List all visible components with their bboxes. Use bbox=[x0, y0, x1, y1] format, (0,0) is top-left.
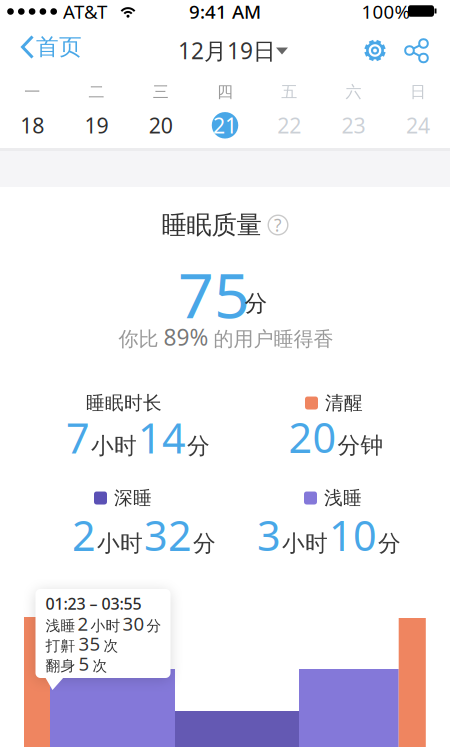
button[interactable]: ? bbox=[267, 214, 288, 235]
staticText: 小时 bbox=[91, 432, 137, 460]
button[interactable]: 六 bbox=[324, 81, 384, 145]
staticText: 14 bbox=[138, 410, 186, 465]
button[interactable] bbox=[50, 669, 175, 747]
button[interactable] bbox=[399, 33, 433, 67]
staticText: 五 bbox=[281, 82, 297, 102]
staticText: 100% bbox=[361, 0, 410, 24]
staticText: 24 bbox=[406, 111, 430, 139]
button[interactable] bbox=[299, 669, 399, 747]
staticText: ? bbox=[274, 213, 282, 236]
staticText: 分 bbox=[193, 530, 216, 557]
button[interactable]: 一 bbox=[2, 81, 62, 145]
staticText: 2 bbox=[77, 611, 88, 636]
staticText: 19 bbox=[84, 111, 108, 139]
staticText: 打鼾 bbox=[45, 637, 75, 655]
staticText: 小时 bbox=[90, 617, 120, 635]
staticText: 分 bbox=[187, 432, 210, 460]
staticText: 的用户睡得香 bbox=[213, 327, 333, 351]
staticText: 18 bbox=[20, 111, 44, 139]
button[interactable]: 日 bbox=[388, 81, 448, 145]
button[interactable]: 五 bbox=[259, 81, 319, 145]
staticText: 日 bbox=[410, 82, 426, 102]
button[interactable] bbox=[358, 33, 392, 67]
staticText: 睡眠时长 bbox=[86, 391, 162, 414]
button[interactable] bbox=[399, 618, 426, 747]
staticText: 23 bbox=[342, 111, 366, 139]
staticText: 10 bbox=[329, 508, 377, 562]
staticText: 30 bbox=[122, 611, 144, 636]
staticText: 20 bbox=[149, 111, 173, 139]
staticText: 分 bbox=[244, 290, 267, 317]
staticText: 次 bbox=[92, 657, 107, 675]
button[interactable] bbox=[24, 617, 50, 747]
staticText: 首页 bbox=[36, 33, 82, 61]
staticText: 一 bbox=[24, 82, 40, 102]
staticText: 四 bbox=[217, 82, 233, 102]
staticText: 9:41 AM bbox=[189, 0, 261, 24]
staticText: 21 bbox=[213, 111, 237, 139]
staticText: 89% bbox=[163, 322, 208, 352]
staticText: 次 bbox=[103, 637, 118, 655]
staticText: 22 bbox=[277, 111, 301, 139]
staticText: 小时 bbox=[282, 530, 328, 557]
staticText: 你比 bbox=[118, 327, 158, 351]
staticText: AT&T bbox=[63, 0, 107, 24]
staticText: 分 bbox=[146, 617, 161, 635]
button[interactable]: 三 bbox=[131, 81, 191, 145]
staticText: 小时 bbox=[97, 530, 143, 557]
staticText: 75 bbox=[178, 252, 250, 336]
staticText: 三 bbox=[153, 82, 169, 102]
button[interactable]: 二 bbox=[66, 81, 126, 145]
staticText: 分钟 bbox=[337, 432, 383, 459]
staticText: 清醒 bbox=[325, 391, 363, 414]
staticText: 2 bbox=[72, 508, 96, 562]
staticText: 5 bbox=[78, 651, 89, 676]
staticText: 翻身 bbox=[45, 657, 75, 675]
staticText: 浅睡 bbox=[45, 617, 75, 635]
staticText: 12月19日 bbox=[178, 35, 276, 65]
staticText: 六 bbox=[346, 82, 362, 102]
staticText: 32 bbox=[144, 508, 192, 562]
staticText: 浅睡 bbox=[324, 486, 362, 509]
staticText: 7 bbox=[66, 410, 90, 465]
staticText: 分 bbox=[378, 530, 401, 557]
staticText: 二 bbox=[88, 82, 104, 102]
button[interactable]: 四 bbox=[195, 81, 255, 145]
staticText: 深睡 bbox=[114, 486, 152, 509]
staticText: 01:23 – 03:55 bbox=[45, 593, 141, 614]
button[interactable]: 12月19日 bbox=[175, 32, 285, 68]
staticText: 3 bbox=[257, 508, 281, 562]
staticText: 20 bbox=[288, 410, 336, 464]
staticText: 35 bbox=[78, 631, 100, 656]
button[interactable]: 首页 bbox=[19, 32, 91, 68]
staticText: 睡眠质量 bbox=[161, 209, 261, 240]
